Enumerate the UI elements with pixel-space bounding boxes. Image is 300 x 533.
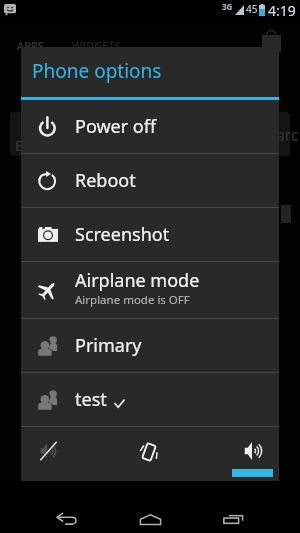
staticText: Airplane mode [75,268,200,293]
button[interactable]: Sound on [194,427,279,481]
button[interactable]: Vibrate mode [109,427,194,481]
button[interactable]: Reboot [21,154,279,207]
button[interactable]: Screenshot [21,208,279,261]
staticText: Primary [75,333,142,358]
staticText: APPS [17,38,44,53]
button[interactable]: Back [25,481,109,533]
button[interactable]: Power off [21,100,279,153]
button[interactable]: Recents [193,481,277,533]
button[interactable]: Airplane mode [21,262,279,318]
staticText: 45 [246,2,258,16]
button[interactable]: Silent mode [21,427,109,481]
button[interactable]: Primary [21,319,279,372]
button[interactable]: test [21,373,279,426]
staticText: Airplane mode is OFF [75,292,190,308]
staticText: WIDGETS [72,38,121,53]
staticText: Power off [75,114,157,139]
staticText: E [15,136,23,155]
staticText: Phone options [32,58,162,84]
staticText: test [75,387,107,412]
staticText: 3G [222,1,233,12]
staticText: 4:19 [268,1,296,20]
staticText: Search [258,124,300,146]
staticText: Screenshot [75,222,170,247]
button[interactable]: Home [109,481,193,533]
staticText: Reboot [75,168,136,193]
